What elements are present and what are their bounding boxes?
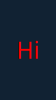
staticText: Hi	[16, 35, 39, 65]
